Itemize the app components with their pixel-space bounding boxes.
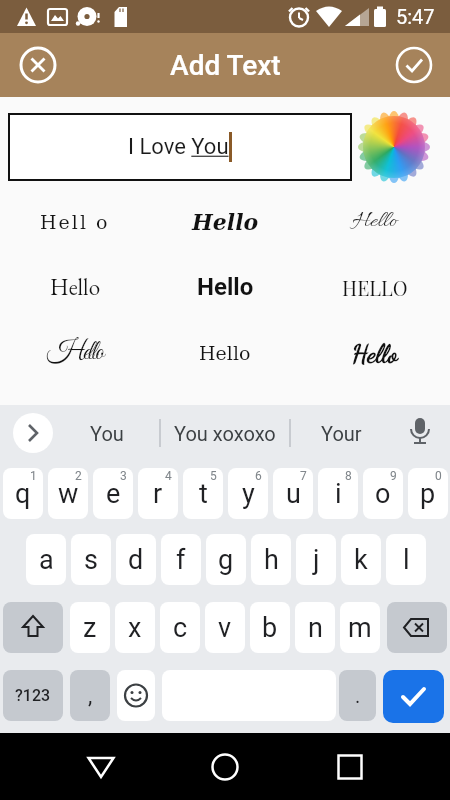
staticText: 2 [75, 469, 82, 483]
button[interactable]: You xoxoxo [163, 413, 287, 453]
staticText: HELLO [342, 274, 408, 301]
staticText: Hello [47, 336, 103, 370]
staticText: g [218, 544, 234, 576]
staticText: x [128, 612, 142, 644]
button[interactable]: Hello [0, 263, 150, 311]
button[interactable]: h [251, 534, 291, 585]
button[interactable]: n [295, 602, 335, 653]
staticText: n [308, 612, 323, 644]
button[interactable]: t [183, 468, 223, 519]
staticText: y [242, 478, 255, 510]
staticText: ?123 [15, 686, 51, 705]
button[interactable]: u [273, 468, 313, 519]
button[interactable]: Hello [300, 329, 450, 377]
staticText: 1 [30, 469, 37, 483]
button[interactable] [387, 602, 447, 653]
button[interactable]: Your [296, 413, 386, 453]
button[interactable] [16, 43, 60, 87]
button[interactable]: HELLO [300, 263, 450, 311]
button[interactable]: Hello [300, 198, 450, 246]
staticText: l [403, 544, 410, 576]
staticText: a [39, 544, 54, 576]
button[interactable]: e [93, 468, 133, 519]
staticText: t [199, 478, 208, 510]
button[interactable]: a [26, 534, 66, 585]
staticText: I Love You [128, 134, 229, 160]
staticText: You [90, 422, 124, 445]
button[interactable] [392, 43, 436, 87]
button[interactable]: y [228, 468, 268, 519]
button[interactable] [77, 743, 125, 791]
button[interactable]: i [318, 468, 358, 519]
staticText: s [84, 544, 98, 576]
button[interactable]: Hello [0, 329, 150, 377]
staticText: v [218, 612, 232, 644]
staticText: 3 [120, 469, 127, 483]
staticText: Hello [352, 338, 398, 369]
button[interactable]: I Love You [8, 113, 352, 181]
button[interactable]: m [340, 602, 380, 653]
button[interactable]: p [408, 468, 448, 519]
staticText: i [335, 478, 342, 510]
staticText: Hello [352, 207, 398, 237]
button[interactable] [326, 743, 374, 791]
staticText: q [15, 478, 31, 510]
staticText: o [375, 478, 391, 510]
button[interactable]: z [70, 602, 110, 653]
button[interactable]: Hello [150, 263, 300, 311]
staticText: 6 [255, 469, 262, 483]
staticText: m [348, 612, 372, 644]
button[interactable]: l [386, 534, 426, 585]
staticText: 5 [210, 469, 217, 483]
button[interactable]: Hell o [0, 198, 150, 246]
staticText: p [420, 478, 436, 510]
button[interactable] [13, 413, 53, 453]
staticText: 9 [390, 469, 397, 483]
staticText: u [286, 478, 301, 510]
staticText: d [128, 544, 144, 576]
button[interactable]: j [296, 534, 336, 585]
button[interactable] [383, 670, 444, 723]
button[interactable]: Hello [150, 198, 300, 246]
staticText: 0 [435, 469, 442, 483]
staticText: Your [321, 422, 362, 445]
button[interactable] [3, 602, 63, 653]
staticText: e [106, 478, 121, 510]
staticText: Hello [192, 209, 259, 235]
staticText: , [88, 683, 93, 709]
staticText: You xoxoxo [174, 422, 276, 445]
button[interactable]: c [160, 602, 200, 653]
staticText: c [173, 612, 188, 644]
staticText: 7 [300, 469, 307, 483]
button[interactable]: k [341, 534, 381, 585]
button[interactable] [201, 743, 249, 791]
button[interactable]: x [115, 602, 155, 653]
button[interactable]: b [250, 602, 290, 653]
staticText: h [264, 544, 279, 576]
staticText: 4 [165, 469, 172, 483]
staticText: Add Text [170, 49, 281, 82]
button[interactable]: g [206, 534, 246, 585]
button[interactable]: d [116, 534, 156, 585]
button[interactable]: You [62, 413, 152, 453]
button[interactable]: ?123 [3, 670, 63, 721]
button[interactable]: Hello [150, 329, 300, 377]
staticText: w [58, 478, 79, 510]
staticText: r [153, 478, 163, 510]
button[interactable]: . [339, 670, 376, 721]
button[interactable]: w [48, 468, 88, 519]
button[interactable]: r [138, 468, 178, 519]
staticText: f [176, 544, 186, 576]
button[interactable]: s [71, 534, 111, 585]
staticText: b [262, 612, 278, 644]
staticText: 8 [345, 469, 352, 483]
button[interactable]: v [205, 602, 245, 653]
staticText: . [355, 684, 361, 707]
button[interactable]: f [161, 534, 201, 585]
staticText: k [354, 544, 368, 576]
button[interactable] [117, 670, 155, 721]
button[interactable]: q [3, 468, 43, 519]
button[interactable]: o [363, 468, 403, 519]
button[interactable]: , [70, 670, 110, 721]
